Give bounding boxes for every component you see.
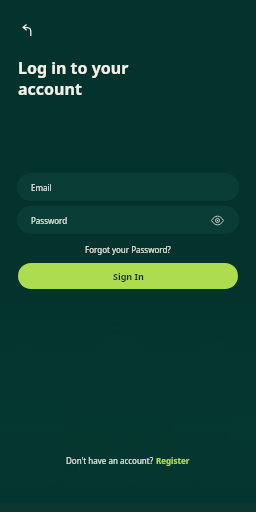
staticText: Register xyxy=(156,455,190,466)
button[interactable]: Back xyxy=(12,16,42,46)
staticText: Don't have an account? xyxy=(66,455,156,466)
button[interactable]: Show password xyxy=(209,212,225,228)
button[interactable]: Don't have an account? xyxy=(0,452,256,469)
button[interactable]: Email xyxy=(17,173,239,201)
button[interactable]: Password xyxy=(17,206,239,234)
staticText: Log in to your account xyxy=(18,57,129,100)
staticText: Sign In xyxy=(113,270,144,282)
button[interactable]: Sign In xyxy=(18,263,238,289)
staticText: Forgot your Password? xyxy=(85,244,171,255)
staticText: Email xyxy=(31,182,52,193)
button[interactable]: Forgot your Password? xyxy=(79,243,177,256)
staticText: Password xyxy=(31,215,68,226)
